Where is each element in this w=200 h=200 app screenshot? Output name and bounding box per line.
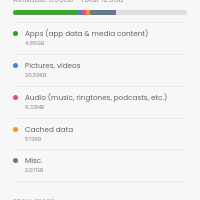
button[interactable]: Audio (music, ringtones, podcasts, etc.) — [0, 86, 200, 118]
staticText: 4.85GB — [25, 39, 45, 47]
button[interactable]: Pictures, videos — [0, 54, 200, 86]
staticText: TOTAL SPACE — [13, 197, 55, 200]
staticText: 6.33MB — [25, 103, 45, 111]
staticText: 2.07GB — [25, 166, 44, 174]
button[interactable]: Misc. — [0, 149, 200, 181]
button[interactable]: Apps (app data & media content) — [0, 22, 200, 54]
staticText: 26.59KB — [25, 71, 47, 79]
staticText: Available: 5.96GB Total: 12.9GB — [13, 0, 124, 5]
staticText: Pictures, videos — [25, 60, 81, 70]
staticText: Cached data — [25, 124, 74, 134]
staticText: Audio (music, ringtones, podcasts, etc.) — [25, 92, 168, 102]
button[interactable]: Cached data — [0, 118, 200, 150]
staticText: 573KB — [25, 135, 42, 143]
staticText: Misc. — [25, 155, 43, 165]
staticText: Apps (app data & media content) — [25, 28, 149, 38]
